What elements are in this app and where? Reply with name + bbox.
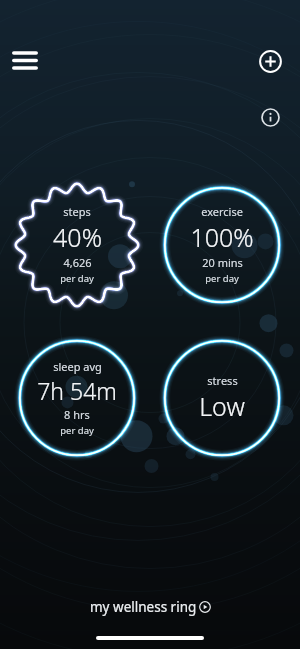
- staticText: 7h 54m: [37, 375, 117, 406]
- staticText: my wellness ring: [90, 598, 197, 616]
- staticText: 4,626: [63, 255, 92, 270]
- button[interactable]: Add: [259, 50, 282, 73]
- staticText: 40%: [53, 220, 102, 254]
- button[interactable]: my wellness ring: [80, 592, 221, 622]
- staticText: per day: [60, 272, 94, 285]
- button[interactable]: Menu: [6, 42, 50, 80]
- staticText: exercise: [201, 204, 243, 219]
- staticText: per day: [60, 424, 94, 437]
- staticText: 8 hrs: [64, 407, 90, 422]
- staticText: Low: [199, 389, 245, 423]
- button[interactable]: Information: [261, 108, 280, 127]
- staticText: stress: [207, 373, 238, 388]
- staticText: sleep avg: [53, 359, 102, 374]
- staticText: steps: [63, 204, 91, 219]
- staticText: 20 mins: [202, 255, 243, 270]
- staticText: 100%: [190, 220, 254, 254]
- staticText: per day: [205, 272, 239, 285]
